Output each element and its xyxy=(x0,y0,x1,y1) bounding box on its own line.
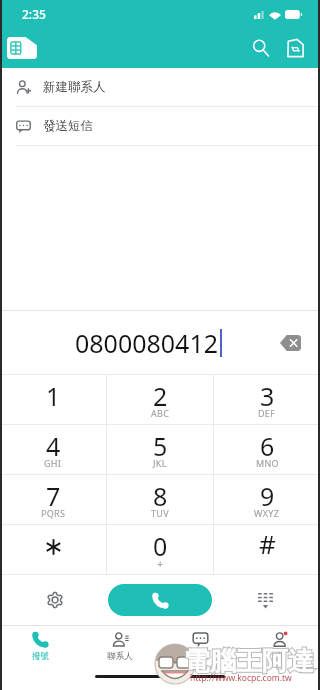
staticText: WXYZ xyxy=(254,507,280,519)
staticText: 電腦王阿達 xyxy=(184,645,314,678)
staticText: 撥號 xyxy=(32,651,49,662)
staticText: 發送短信 xyxy=(43,118,93,134)
staticText: + xyxy=(157,556,164,571)
staticText: # xyxy=(259,526,276,561)
staticText: GHI xyxy=(44,457,62,469)
button[interactable]: Delete xyxy=(265,311,315,374)
button[interactable]: Search xyxy=(244,31,278,65)
button[interactable]: SIM card xyxy=(4,30,40,66)
button[interactable]: 新建聯系人 xyxy=(0,68,320,106)
staticText: 4 xyxy=(46,429,61,463)
button[interactable]: Settings xyxy=(38,583,72,617)
staticText: MNO xyxy=(256,457,279,469)
staticText: DEF xyxy=(258,407,276,419)
button[interactable]: 8 xyxy=(107,475,213,524)
staticText: ABC xyxy=(151,407,170,419)
button[interactable]: # xyxy=(214,525,320,574)
staticText: 電腦王阿達 xyxy=(184,645,314,678)
staticText: 我 xyxy=(276,651,285,662)
staticText: 0 xyxy=(153,529,168,563)
staticText: JKL xyxy=(153,457,167,469)
button[interactable]: 訊息 xyxy=(160,626,240,690)
button[interactable]: 發送短信 xyxy=(0,107,320,145)
staticText: http://www.kocpc.com.tw xyxy=(190,672,292,684)
staticText: 0800080412 xyxy=(75,326,219,360)
button[interactable]: Call xyxy=(108,584,212,616)
staticText: 2 xyxy=(153,379,168,413)
staticText: 8 xyxy=(153,479,168,513)
button[interactable]: 6 xyxy=(214,425,320,474)
staticText: 3 xyxy=(260,379,275,413)
staticText: 6 xyxy=(260,429,275,463)
staticText: 7 xyxy=(46,479,61,513)
button[interactable]: 我 xyxy=(240,626,320,690)
button[interactable]: 4 xyxy=(0,425,106,474)
staticText: 2:35 xyxy=(22,6,46,22)
staticText: TUV xyxy=(151,507,169,519)
staticText: 新建聯系人 xyxy=(43,79,106,95)
staticText: 5 xyxy=(153,429,168,463)
button[interactable]: 0 xyxy=(107,525,213,574)
button[interactable]: 3 xyxy=(214,375,320,424)
staticText: 1 xyxy=(46,379,61,413)
button[interactable]: 1 xyxy=(0,375,106,424)
staticText: 聯系人 xyxy=(107,651,133,662)
button[interactable] xyxy=(0,525,106,574)
button[interactable]: 撥號 xyxy=(0,626,80,690)
staticText: 9 xyxy=(260,479,275,513)
button[interactable]: 7 xyxy=(0,475,106,524)
button[interactable]: 聯系人 xyxy=(80,626,160,690)
staticText: PQRS xyxy=(41,507,66,519)
button[interactable]: 5 xyxy=(107,425,213,474)
staticText: 訊息 xyxy=(192,651,209,662)
button[interactable]: 9 xyxy=(214,475,320,524)
button[interactable]: Call log xyxy=(278,31,312,65)
button[interactable]: 2 xyxy=(107,375,213,424)
button[interactable]: Hide keypad xyxy=(248,583,282,617)
